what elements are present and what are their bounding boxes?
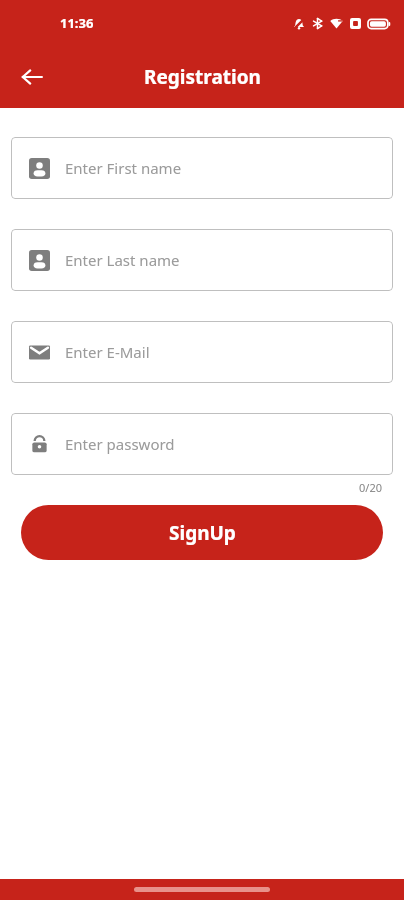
staticText: Enter Last name bbox=[65, 250, 180, 270]
button[interactable]: Enter password bbox=[11, 413, 393, 475]
staticText: Enter First name bbox=[65, 158, 182, 178]
staticText: 11:36 bbox=[60, 14, 94, 32]
staticText: Enter E-Mail bbox=[65, 342, 150, 362]
button[interactable]: Enter Last name bbox=[11, 229, 393, 291]
button[interactable]: Enter First name bbox=[11, 137, 393, 199]
button[interactable]: Enter E-Mail bbox=[11, 321, 393, 383]
staticText: 0/20 bbox=[359, 480, 382, 495]
staticText: SignUp bbox=[169, 520, 236, 546]
staticText: Enter password bbox=[65, 434, 175, 454]
button[interactable]: SignUp bbox=[21, 505, 383, 560]
button[interactable]: Back bbox=[10, 55, 54, 99]
staticText: Registration bbox=[144, 64, 261, 90]
